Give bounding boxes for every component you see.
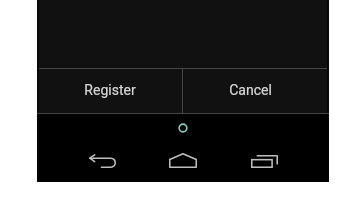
button[interactable]: Home: [154, 138, 212, 184]
button[interactable]: Register: [37, 69, 182, 113]
button[interactable]: Back: [73, 138, 131, 184]
button[interactable]: Home handle: [177, 122, 189, 134]
staticText: Register: [84, 82, 136, 98]
button[interactable]: Cancel: [183, 69, 329, 113]
button[interactable]: Recent apps: [235, 138, 293, 184]
staticText: Cancel: [229, 82, 272, 98]
